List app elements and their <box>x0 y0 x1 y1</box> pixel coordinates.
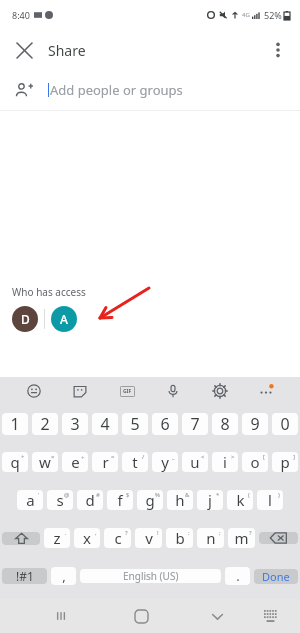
button[interactable]: D <box>12 306 38 332</box>
button[interactable]: A <box>51 306 77 332</box>
staticText: !#1 <box>16 568 34 584</box>
button[interactable]: Close <box>6 32 42 68</box>
staticText: 4 <box>100 413 110 435</box>
staticText: u <box>190 452 200 472</box>
staticText: * <box>216 491 220 499</box>
button[interactable]: English (US) <box>80 569 221 583</box>
staticText: 9 <box>250 413 260 435</box>
staticText: Add people or groups <box>50 81 183 99</box>
staticText: 3 <box>70 413 80 435</box>
button[interactable]: . <box>225 567 250 585</box>
button[interactable]: Change keyboard <box>255 601 285 631</box>
staticText: e <box>71 452 80 472</box>
button[interactable]: e <box>62 452 88 472</box>
button[interactable]: l <box>257 490 283 510</box>
staticText: a <box>26 490 35 510</box>
button[interactable]: Voice input <box>160 378 186 404</box>
staticText: g <box>145 490 155 510</box>
staticText: x <box>83 528 91 548</box>
button[interactable]: More <box>253 378 279 404</box>
button[interactable]: 2 <box>32 413 58 435</box>
staticText: Who has access <box>12 285 86 299</box>
staticText: + <box>21 453 25 461</box>
staticText: p <box>280 452 290 472</box>
staticText: < <box>201 453 205 461</box>
button[interactable]: j <box>197 490 223 510</box>
staticText: ] <box>293 453 295 461</box>
button[interactable]: 3 <box>62 413 88 435</box>
button[interactable]: z <box>44 528 70 548</box>
button[interactable]: 0 <box>272 413 298 435</box>
button[interactable]: t <box>122 452 148 472</box>
button[interactable]: n <box>197 528 224 548</box>
button[interactable]: Emoji <box>21 378 47 404</box>
staticText: r <box>102 452 109 472</box>
staticText: , <box>95 529 97 537</box>
button[interactable]: 4 <box>92 413 118 435</box>
button[interactable]: f <box>107 490 133 510</box>
button[interactable]: Hide keyboard <box>202 601 232 631</box>
button[interactable]: m <box>228 528 255 548</box>
button[interactable]: Shift <box>2 532 40 545</box>
button[interactable]: a <box>17 490 43 510</box>
staticText: ' <box>38 491 40 499</box>
staticText: ; <box>219 529 221 537</box>
staticText: # <box>96 491 100 499</box>
staticText: English (US) <box>123 569 179 583</box>
staticText: o <box>250 452 260 472</box>
button[interactable]: w <box>32 452 58 472</box>
button[interactable]: 9 <box>242 413 268 435</box>
button[interactable]: y <box>152 452 178 472</box>
button[interactable]: Settings <box>207 378 233 404</box>
staticText: × <box>51 453 55 461</box>
button[interactable]: q <box>2 452 28 472</box>
staticText: / <box>142 453 145 461</box>
button[interactable]: k <box>227 490 253 510</box>
button[interactable]: d <box>77 490 103 510</box>
button[interactable]: 1 <box>2 413 28 435</box>
staticText: m <box>234 528 249 548</box>
staticText: _ <box>172 453 175 461</box>
button[interactable]: p <box>272 452 298 472</box>
button[interactable]: h <box>167 490 193 510</box>
button[interactable]: 5 <box>122 413 148 435</box>
button[interactable]: r <box>92 452 118 472</box>
button[interactable]: v <box>135 528 162 548</box>
staticText: 8:40 <box>12 9 30 21</box>
button[interactable]: More options <box>260 32 296 68</box>
staticText: 1 <box>10 413 20 435</box>
button[interactable]: Backspace <box>259 532 298 544</box>
staticText: Done <box>262 569 290 584</box>
staticText: . <box>65 529 67 537</box>
button[interactable]: x <box>74 528 100 548</box>
staticText: D <box>21 311 30 327</box>
button[interactable]: , <box>51 567 76 585</box>
button[interactable]: GIF <box>114 378 140 404</box>
button[interactable]: i <box>212 452 238 472</box>
staticText: 5 <box>130 413 140 435</box>
staticText: b <box>175 528 185 548</box>
staticText: d <box>85 490 95 510</box>
button[interactable]: u <box>182 452 208 472</box>
staticText: f <box>117 490 123 510</box>
button[interactable]: Done <box>254 569 298 584</box>
staticText: y <box>161 452 169 472</box>
button[interactable]: !#1 <box>2 568 47 584</box>
button[interactable]: 7 <box>182 413 208 435</box>
button[interactable]: b <box>166 528 193 548</box>
staticText: = <box>111 453 115 461</box>
button[interactable]: c <box>104 528 131 548</box>
button[interactable]: 6 <box>152 413 178 435</box>
button[interactable]: Home <box>126 601 156 631</box>
button[interactable]: g <box>137 490 163 510</box>
staticText: ! <box>157 529 159 537</box>
staticText: A <box>60 311 68 327</box>
button[interactable]: Add people or groups <box>0 70 300 110</box>
button[interactable]: s <box>47 490 73 510</box>
button[interactable]: Recent apps <box>46 601 76 631</box>
button[interactable]: o <box>242 452 268 472</box>
button[interactable]: 8 <box>212 413 238 435</box>
staticText: 8 <box>220 413 230 435</box>
button[interactable]: Stickers <box>67 378 93 404</box>
staticText: $ <box>126 491 130 499</box>
